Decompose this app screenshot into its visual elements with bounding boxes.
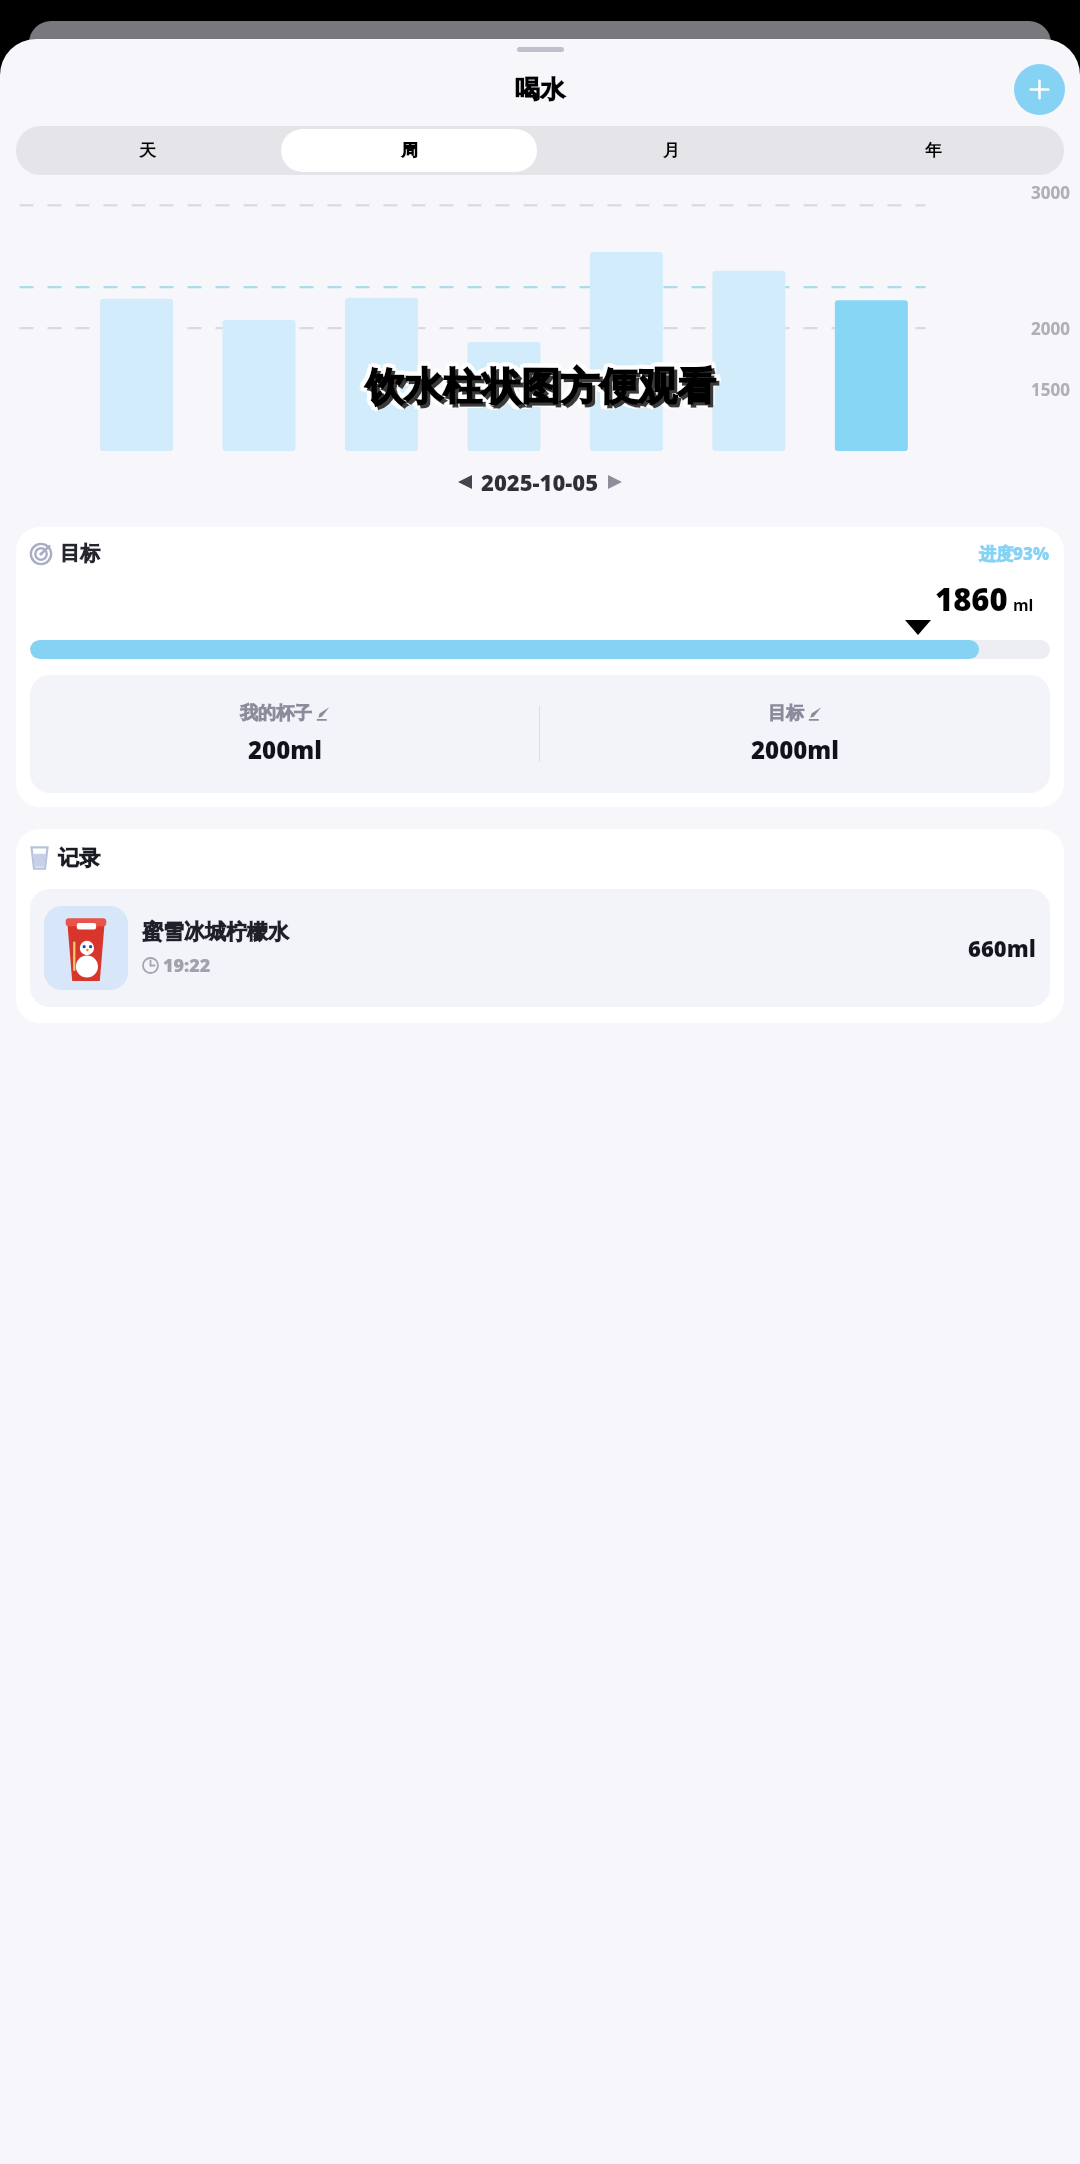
staticText: 周 bbox=[401, 140, 418, 161]
staticText: 2000 bbox=[1031, 317, 1070, 340]
staticText: 月 bbox=[663, 140, 680, 161]
button[interactable]: Previous day bbox=[449, 466, 481, 498]
button[interactable]: 周 bbox=[281, 129, 537, 172]
staticText: 200ml bbox=[248, 733, 322, 766]
button[interactable]: 目标 bbox=[540, 702, 1050, 766]
staticText: 天 bbox=[139, 140, 156, 161]
staticText: 进度93% bbox=[979, 542, 1050, 565]
button[interactable]: 蜜雪冰城柠檬水 bbox=[30, 889, 1050, 1007]
button[interactable]: 年 bbox=[805, 129, 1061, 172]
staticText: 饮水柱状图方便观看 bbox=[365, 366, 716, 415]
staticText: 3000 bbox=[1031, 181, 1070, 204]
button[interactable]: 我的杯子 bbox=[30, 702, 539, 766]
staticText: 饮水柱状图方便观看 bbox=[365, 358, 716, 407]
staticText: 饮水柱状图方便观看 bbox=[362, 359, 713, 408]
staticText: 2025-10-05 bbox=[481, 467, 599, 497]
staticText: 饮水柱状图方便观看 bbox=[368, 365, 719, 414]
staticText: 1860 bbox=[935, 578, 1008, 620]
button[interactable]: 月 bbox=[543, 129, 799, 172]
button[interactable]: Add record bbox=[1014, 64, 1065, 115]
staticText: 我的杯子 bbox=[240, 702, 312, 725]
staticText: 19:22 bbox=[163, 953, 211, 978]
staticText: 饮水柱状图方便观看 bbox=[368, 365, 719, 414]
staticText: 目标 bbox=[768, 702, 804, 725]
button[interactable]: 目标 bbox=[16, 527, 1064, 807]
staticText: 1500 bbox=[1031, 378, 1070, 401]
button[interactable]: 天 bbox=[19, 129, 275, 172]
staticText: 2000ml bbox=[751, 733, 840, 766]
staticText: 饮水柱状图方便观看 bbox=[362, 365, 713, 414]
staticText: 记录 bbox=[58, 845, 100, 871]
staticText: ml bbox=[1013, 594, 1034, 616]
staticText: 目标 bbox=[60, 541, 100, 566]
staticText: 饮水柱状图方便观看 bbox=[365, 362, 716, 411]
staticText: 喝水 bbox=[515, 74, 565, 105]
staticText: 饮水柱状图方便观看 bbox=[368, 359, 719, 408]
staticText: 660ml bbox=[968, 933, 1036, 963]
button[interactable]: Next day bbox=[599, 466, 631, 498]
staticText: 饮水柱状图方便观看 bbox=[361, 362, 712, 411]
staticText: 年 bbox=[925, 140, 942, 161]
staticText: 饮水柱状图方便观看 bbox=[369, 362, 720, 411]
staticText: 蜜雪冰城柠檬水 bbox=[142, 919, 289, 945]
